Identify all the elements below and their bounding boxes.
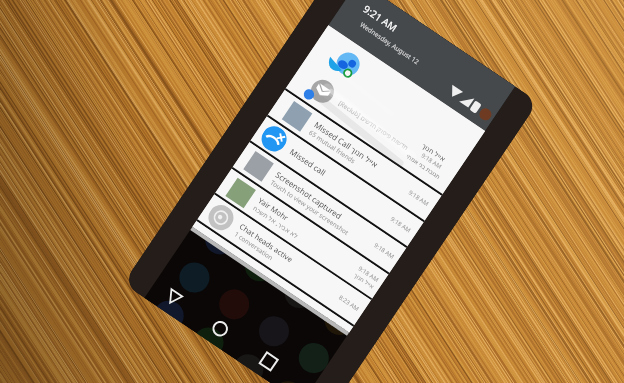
staticText: 9:17 AM [323, 315, 346, 334]
staticText: Missed Call אייל חנוך [312, 119, 381, 170]
button[interactable]: Missed Call אייל חנוך [268, 90, 441, 221]
staticText: 9:18 AM [420, 151, 443, 171]
staticText: Wednesday, August 12 [358, 20, 421, 66]
staticText: 9:18 AM [372, 241, 396, 261]
staticText: 9:21 AM [361, 2, 400, 35]
staticText: Touch to view your screenshot [269, 178, 351, 237]
staticText: Yair Mohr [256, 195, 291, 223]
staticText: 8:23 AM [337, 294, 361, 313]
button[interactable]: Account [477, 106, 494, 123]
staticText: [Reclub] חדשות פיסוק חדשים [337, 98, 411, 152]
staticText: תגובת בני אמתי [405, 152, 442, 181]
staticText: 9:18 AM [357, 265, 380, 284]
button[interactable]: 9:21 AM [328, 0, 515, 131]
button[interactable]: Yair Mohr [215, 169, 388, 298]
staticText: 9:18 AM [407, 189, 430, 208]
staticText: אייל חנוך [419, 141, 447, 165]
button[interactable]: [Reclub] חדשות פיסוק חדשים [286, 25, 485, 194]
button[interactable]: Chat heads active [197, 194, 371, 325]
staticText: אייל חנוך [352, 271, 376, 291]
staticText: Screenshot captured [274, 169, 344, 221]
staticText: לא אביר, אל תשכח [251, 203, 300, 241]
staticText: 9:18 AM [389, 215, 412, 235]
button[interactable]: Screenshot captured [233, 142, 406, 273]
staticText: Chat heads active [238, 221, 295, 264]
staticText: Missed call [288, 146, 328, 178]
staticText: 65 mutual friends [307, 128, 357, 165]
staticText: 1 conversation [233, 229, 275, 262]
button[interactable]: Missed call [251, 116, 423, 246]
button[interactable]: 9:17 AM [192, 221, 353, 332]
